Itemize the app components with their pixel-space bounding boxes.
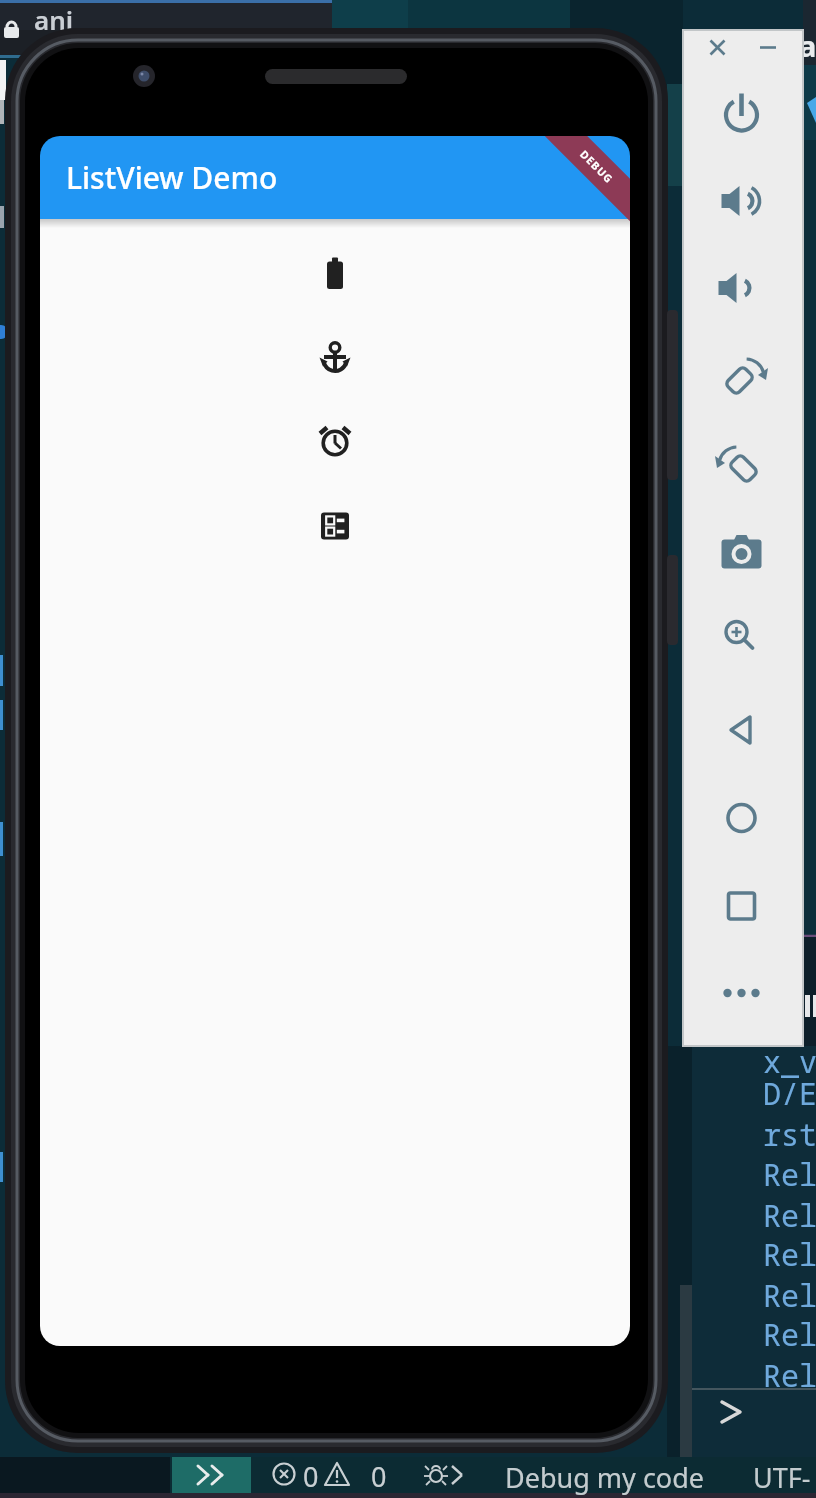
staticText: Rel	[763, 1154, 816, 1195]
button[interactable]	[717, 177, 765, 225]
staticText: x_v	[763, 1041, 816, 1082]
button[interactable]	[706, 36, 730, 60]
button[interactable]	[268, 1457, 398, 1493]
button[interactable]	[717, 794, 765, 842]
staticText: Rel	[763, 1195, 816, 1236]
staticText: 0	[303, 1458, 319, 1495]
staticText: DEBUG	[577, 147, 617, 187]
button[interactable]	[40, 233, 630, 317]
button[interactable]	[717, 617, 765, 665]
staticText: 0	[371, 1458, 387, 1495]
button[interactable]	[717, 264, 765, 312]
button[interactable]	[717, 970, 765, 1018]
staticText: ai	[799, 26, 816, 65]
button[interactable]	[717, 91, 765, 139]
button[interactable]	[756, 36, 780, 60]
button[interactable]	[40, 317, 630, 401]
button[interactable]	[717, 354, 765, 402]
staticText: Rel	[763, 1355, 816, 1396]
staticText: Rel	[763, 1275, 816, 1316]
button[interactable]	[717, 529, 765, 577]
staticText: ListView Demo	[66, 157, 278, 198]
staticText: rst	[763, 1114, 816, 1155]
staticText: UTF-	[753, 1459, 811, 1496]
staticText: Rel	[763, 1314, 816, 1355]
button[interactable]	[420, 1457, 720, 1493]
staticText: D/E	[763, 1073, 816, 1114]
button[interactable]	[172, 1457, 251, 1493]
button[interactable]	[717, 882, 765, 930]
button[interactable]	[717, 442, 765, 490]
button[interactable]	[40, 401, 630, 485]
staticText: Debug my code	[505, 1459, 705, 1496]
button[interactable]	[40, 485, 630, 569]
staticText: ani	[34, 2, 74, 37]
staticText: Rel	[763, 1234, 816, 1275]
button[interactable]	[717, 706, 765, 754]
